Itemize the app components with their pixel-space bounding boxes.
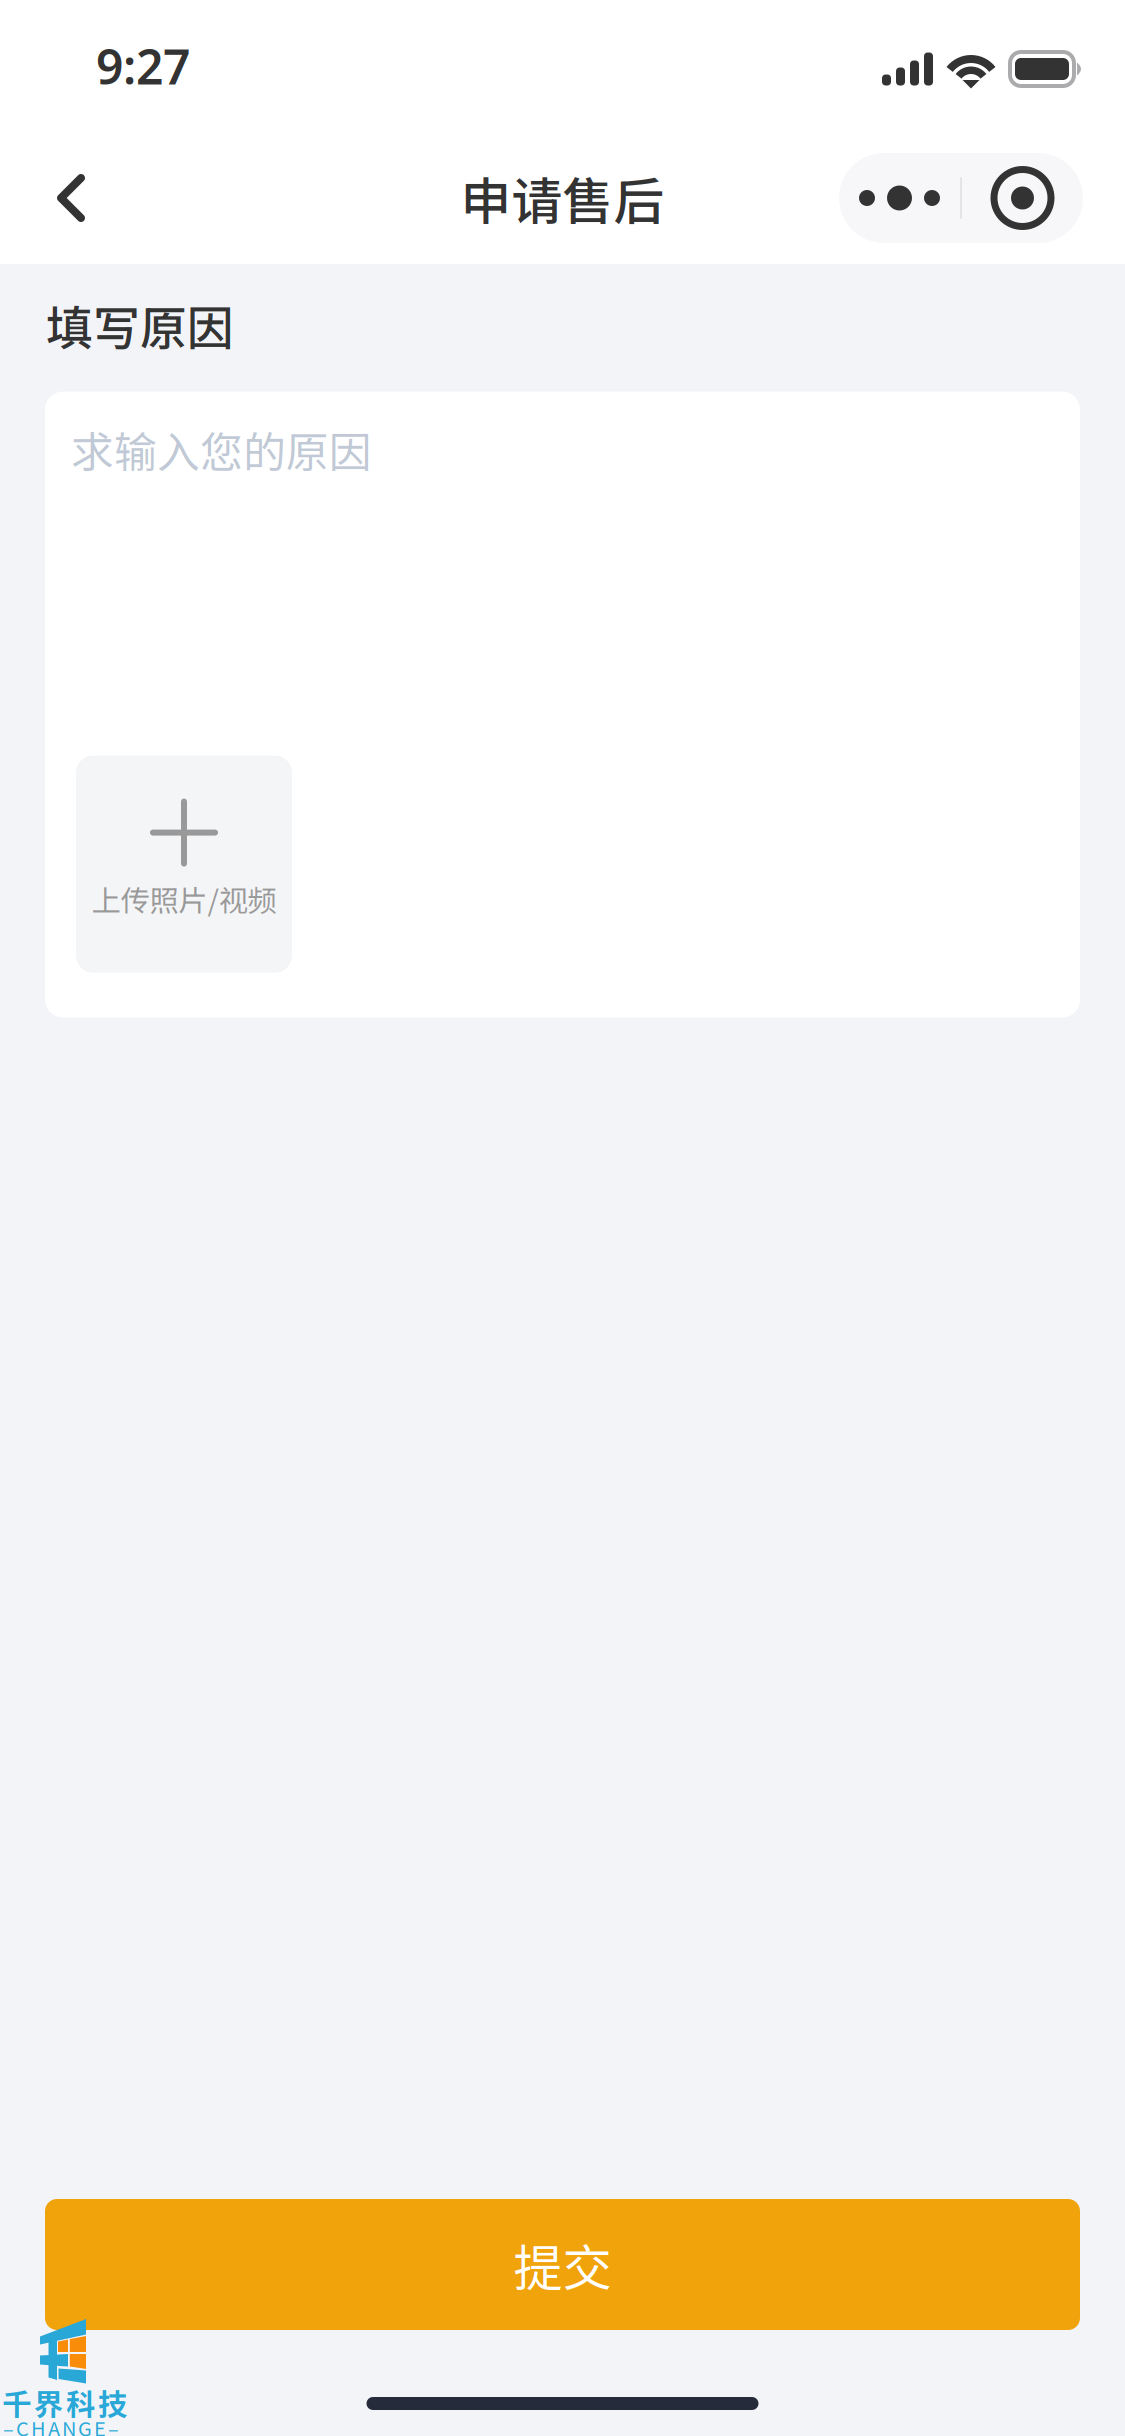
staticText: 上传照片/视频 (91, 878, 276, 920)
staticText: –CHANGE– (3, 2413, 119, 2436)
staticText: 提交 (513, 2229, 611, 2300)
staticText: 9:27 (96, 34, 190, 98)
button[interactable]: 上传照片/视频 (76, 756, 292, 973)
staticText: 申请售后 (460, 161, 664, 235)
staticText: 求输入您的原因 (71, 419, 372, 480)
button[interactable]: 求输入您的原因 (45, 392, 1080, 1018)
button[interactable]: Close mini program (962, 153, 1083, 243)
staticText: 千界科技 (2, 2381, 127, 2423)
staticText: 填写原因 (46, 291, 234, 359)
button[interactable]: Back (23, 143, 119, 253)
button[interactable]: 提交 (45, 2199, 1080, 2330)
button[interactable]: More (839, 153, 960, 243)
